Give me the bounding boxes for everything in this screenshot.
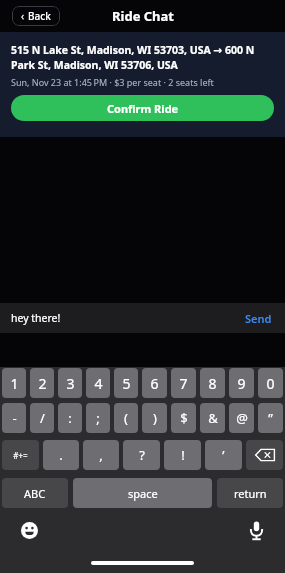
- staticText: #+=: [13, 450, 28, 461]
- staticText: .: [59, 446, 63, 464]
- staticText: ”: [268, 409, 273, 427]
- staticText: 5: [122, 374, 131, 393]
- button[interactable]: Backspace: [246, 440, 283, 470]
- staticText: Send: [245, 311, 272, 326]
- staticText: ?: [139, 446, 145, 464]
- button[interactable]: &: [200, 403, 225, 433]
- staticText: @: [236, 409, 248, 427]
- button[interactable]: ‹: [12, 6, 60, 26]
- staticText: 8: [208, 374, 217, 393]
- staticText: 1: [10, 374, 19, 393]
- button[interactable]: 8: [200, 368, 225, 398]
- button[interactable]: ): [142, 403, 167, 433]
- staticText: 515 N Lake St, Madison, WI 53703, USA → …: [11, 43, 274, 72]
- staticText: &: [208, 409, 218, 427]
- button[interactable]: ”: [258, 403, 283, 433]
- button[interactable]: :: [58, 403, 82, 433]
- button[interactable]: @: [229, 403, 254, 433]
- staticText: ;: [96, 409, 100, 427]
- staticText: Ride Chat: [112, 7, 174, 25]
- staticText: ): [153, 409, 157, 427]
- button[interactable]: 1: [2, 368, 26, 398]
- staticText: return: [234, 486, 267, 501]
- button[interactable]: return: [217, 478, 283, 508]
- staticText: ’: [222, 446, 225, 464]
- button[interactable]: (: [114, 403, 138, 433]
- staticText: !: [181, 446, 185, 464]
- button[interactable]: ’: [205, 440, 242, 470]
- button[interactable]: ;: [86, 403, 110, 433]
- staticText: (: [124, 409, 128, 427]
- button[interactable]: .: [43, 440, 79, 470]
- button[interactable]: ABC: [2, 478, 68, 508]
- staticText: 4: [94, 374, 103, 393]
- button[interactable]: 3: [58, 368, 82, 398]
- button[interactable]: 5: [114, 368, 138, 398]
- staticText: 0: [266, 374, 275, 393]
- staticText: 2: [38, 374, 47, 393]
- staticText: space: [128, 486, 158, 501]
- button[interactable]: #+=: [2, 440, 39, 470]
- button[interactable]: 7: [171, 368, 196, 398]
- button[interactable]: 0: [258, 368, 283, 398]
- staticText: :: [68, 409, 72, 427]
- button[interactable]: $: [171, 403, 196, 433]
- staticText: /: [40, 409, 45, 427]
- staticText: Confirm Ride: [107, 101, 179, 116]
- staticText: Back: [28, 9, 51, 23]
- button[interactable]: !: [164, 440, 201, 470]
- staticText: 7: [179, 374, 188, 393]
- button[interactable]: Confirm Ride: [11, 95, 274, 121]
- button[interactable]: 2: [30, 368, 54, 398]
- button[interactable]: -: [2, 403, 26, 433]
- button[interactable]: 4: [86, 368, 110, 398]
- button[interactable]: Dictation: [245, 519, 267, 541]
- button[interactable]: 6: [142, 368, 167, 398]
- staticText: hey there!: [11, 311, 243, 325]
- button[interactable]: Emoji: [18, 519, 40, 541]
- button[interactable]: 9: [229, 368, 254, 398]
- staticText: -: [12, 409, 17, 427]
- button[interactable]: ?: [123, 440, 160, 470]
- staticText: Sun, Nov 23 at 1:45 PM · $3 per seat · 2…: [11, 76, 214, 88]
- staticText: 9: [237, 374, 246, 393]
- staticText: $: [180, 409, 188, 427]
- button[interactable]: ,: [83, 440, 119, 470]
- staticText: 3: [66, 374, 75, 393]
- staticText: 6: [150, 374, 159, 393]
- staticText: ,: [99, 446, 103, 464]
- staticText: ‹: [21, 9, 25, 23]
- button[interactable]: /: [30, 403, 54, 433]
- staticText: ABC: [24, 486, 46, 501]
- button[interactable]: space: [73, 478, 212, 508]
- button[interactable]: Send: [243, 308, 274, 329]
